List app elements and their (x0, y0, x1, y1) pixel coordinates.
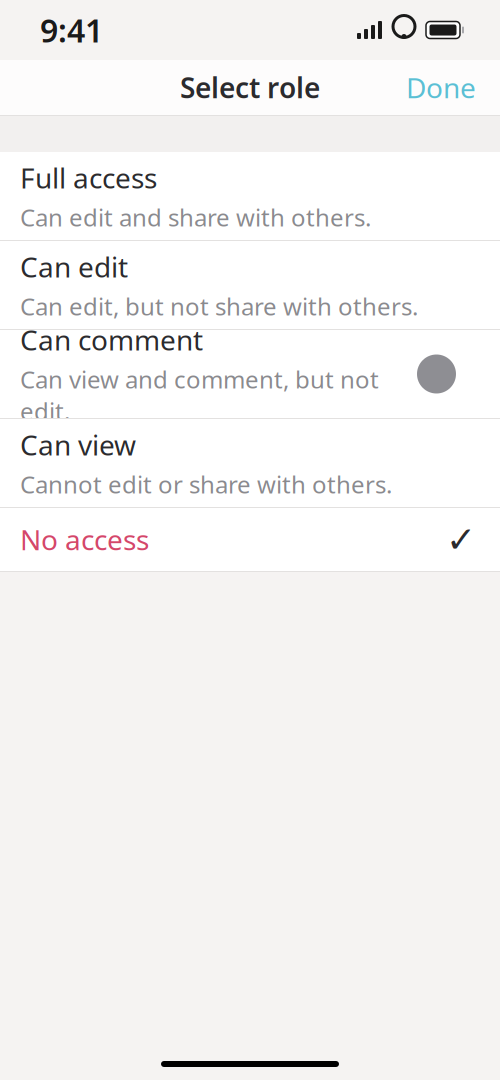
staticText: Can edit (20, 248, 128, 285)
staticText: Can edit and share with others. (20, 201, 371, 233)
button[interactable]: Can edit (0, 241, 500, 329)
staticText: Select role (180, 69, 320, 106)
staticText: ✓ (446, 519, 476, 560)
staticText: Can view and comment, but not edit. (20, 363, 379, 427)
staticText: No access (20, 521, 149, 558)
button[interactable]: Done (388, 57, 494, 118)
staticText: Can view (20, 426, 136, 463)
button[interactable]: No access (0, 508, 500, 571)
button[interactable]: Can comment (0, 330, 500, 418)
button[interactable]: Full access (0, 152, 500, 240)
staticText: Cannot edit or share with others. (20, 468, 392, 500)
staticText: Can comment (20, 321, 203, 358)
staticText: Done (406, 69, 476, 106)
staticText: 9:41 (40, 9, 103, 51)
staticText: Can edit, but not share with others. (20, 290, 418, 322)
staticText: Full access (20, 159, 157, 196)
button[interactable]: Can view (0, 419, 500, 507)
